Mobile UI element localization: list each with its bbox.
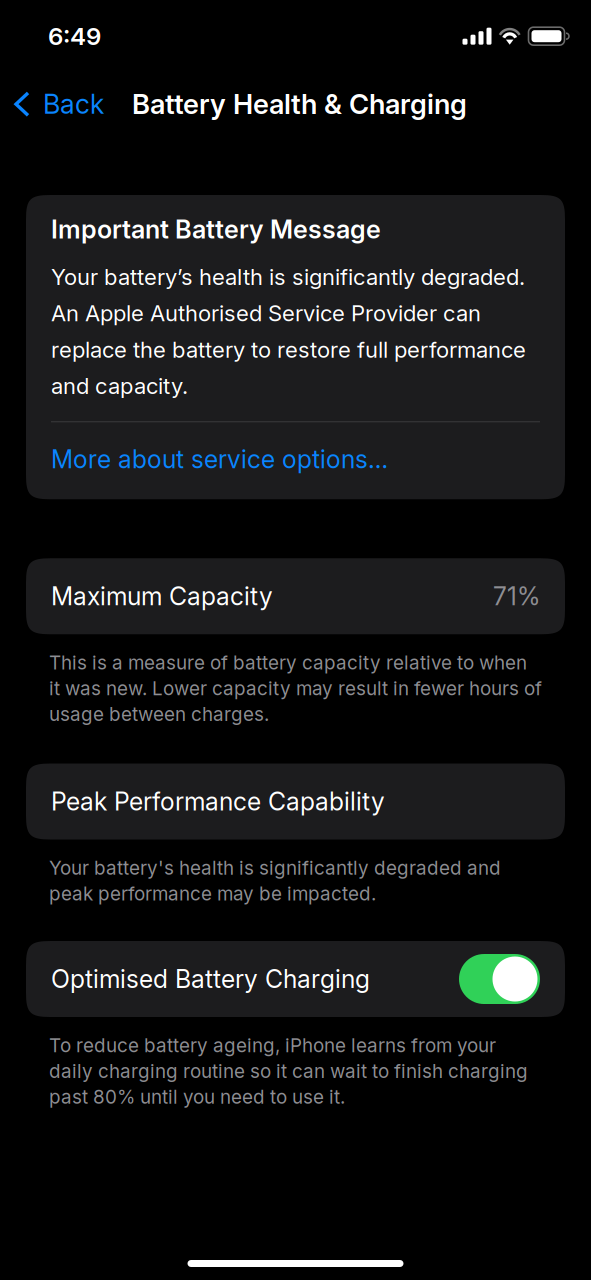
staticText: 6:49 — [48, 21, 101, 51]
staticText: Back — [43, 88, 104, 120]
staticText: Battery Health & Charging — [132, 87, 467, 121]
staticText: 71% — [493, 581, 540, 611]
staticText: Important Battery Message — [51, 214, 381, 245]
staticText: Peak Performance Capability — [51, 786, 385, 816]
button[interactable]: More about service options… — [51, 422, 540, 499]
button[interactable]: Peak Performance Capability — [26, 763, 565, 839]
staticText: Maximum Capacity — [51, 581, 273, 611]
button[interactable]: Optimised Battery Charging — [459, 954, 540, 1004]
staticText: More about service options… — [51, 444, 388, 474]
staticText: Your battery's health is significantly d… — [49, 856, 501, 905]
button[interactable]: Back — [0, 79, 104, 129]
staticText: To reduce battery ageing, iPhone learns … — [49, 1034, 528, 1108]
staticText: Your battery’s health is significantly d… — [51, 264, 526, 399]
staticText: Optimised Battery Charging — [51, 964, 370, 994]
staticText: This is a measure of battery capacity re… — [49, 651, 542, 725]
